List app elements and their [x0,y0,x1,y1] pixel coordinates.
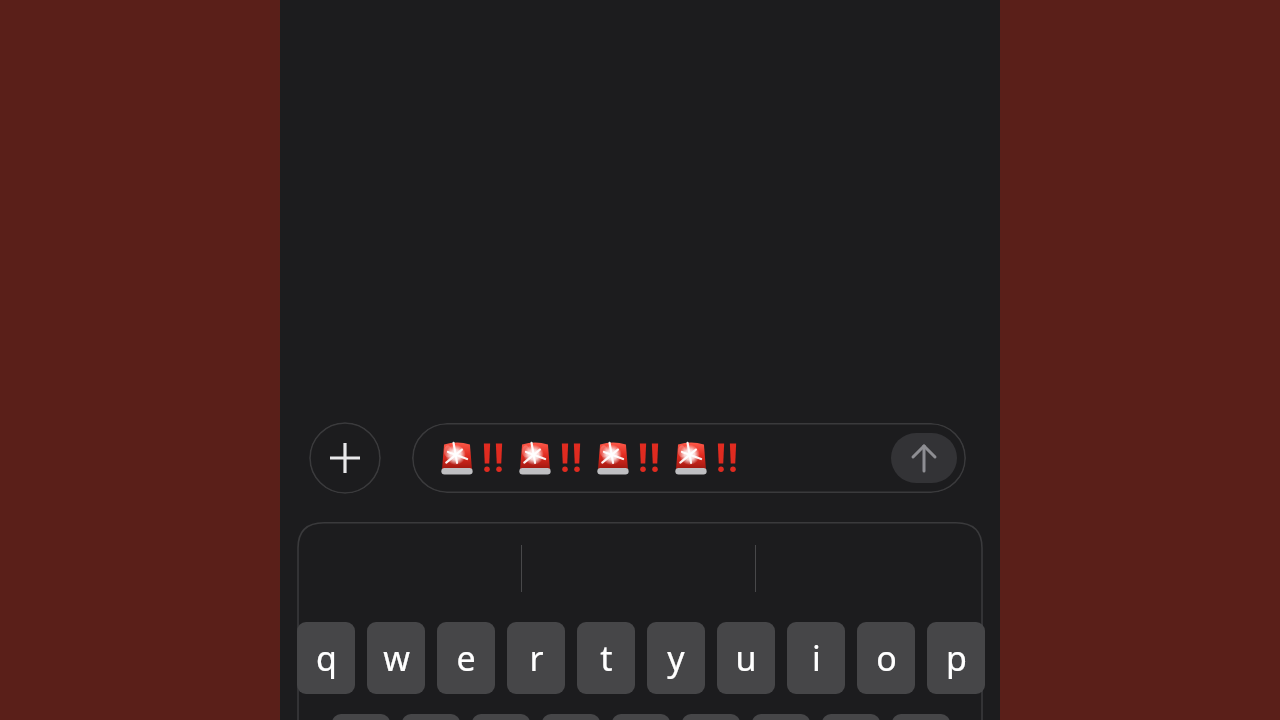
staticText: i [812,635,821,681]
button[interactable]: f [542,714,600,720]
button[interactable]: w [367,622,425,694]
staticText: y [667,635,685,681]
staticText: r [529,635,544,681]
button[interactable]: g [612,714,670,720]
button[interactable]: q [297,622,355,694]
button[interactable]: s [402,714,460,720]
button[interactable]: h [682,714,740,720]
button[interactable]: a [332,714,390,720]
staticText: e [456,635,476,681]
button[interactable]: d [472,714,530,720]
button[interactable]: i [787,622,845,694]
button[interactable]: Add attachment [309,422,381,494]
button[interactable]: o [857,622,915,694]
button[interactable]: e [437,622,495,694]
button[interactable] [412,423,966,493]
button[interactable]: p [927,622,985,694]
staticText: w [383,635,410,681]
button[interactable]: y [647,622,705,694]
staticText: u [735,635,757,681]
button[interactable]: u [717,622,775,694]
staticText: q [316,635,337,681]
button[interactable]: Send [891,433,957,483]
button[interactable]: r [507,622,565,694]
button[interactable]: k [822,714,880,720]
staticText: p [946,635,967,681]
button[interactable]: t [577,622,635,694]
staticText: t [600,635,613,681]
button[interactable]: l [892,714,950,720]
staticText: o [876,635,897,681]
button[interactable]: j [752,714,810,720]
